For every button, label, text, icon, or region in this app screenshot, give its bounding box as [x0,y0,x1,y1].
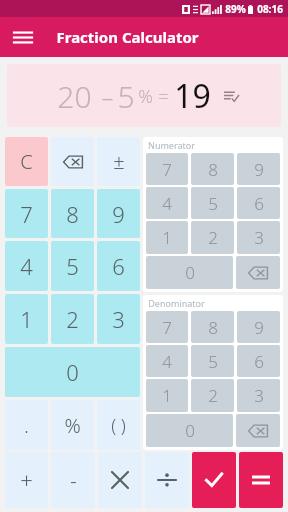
button[interactable]: 0 [5,347,140,397]
button[interactable]: 9 [97,189,140,238]
button[interactable]: Backspace Numerator [236,256,280,289]
button[interactable]: 4 [146,345,188,377]
staticText: 1 [162,384,172,407]
staticText: 8 [66,199,79,229]
button[interactable]: 6 [237,187,280,219]
staticText: . [24,412,29,439]
staticText: 2 [208,226,218,249]
staticText: + [20,465,33,495]
staticText: Numerator [148,139,195,151]
button[interactable]: 5 [191,187,234,219]
button[interactable]: 1 [146,221,188,254]
staticText: 89% [225,2,246,16]
staticText: % [138,84,153,109]
button[interactable]: . [5,400,48,450]
staticText: 5 [208,192,218,215]
staticText: 5 [208,350,218,373]
button[interactable]: 1 [5,294,48,344]
staticText: 8 [208,158,218,181]
staticText: 3 [112,304,125,334]
staticText: ± [113,148,125,175]
staticText: 7 [20,199,33,229]
button[interactable]: 7 [5,189,48,238]
button[interactable]: 9 [237,311,280,343]
staticText: 08:16 [257,2,283,16]
button[interactable]: 8 [191,153,234,185]
button[interactable]: 2 [51,294,94,344]
staticText: 0 [66,357,79,387]
button[interactable]: 8 [51,189,94,238]
staticText: 19 [174,74,211,118]
button[interactable]: 3 [237,379,280,412]
button[interactable]: History [221,86,241,106]
button[interactable]: 8 [191,311,234,343]
staticText: % [64,412,81,439]
staticText: 6 [254,192,264,215]
button[interactable]: 7 [146,153,188,185]
staticText: 8 [208,316,218,339]
staticText: 20 [57,76,92,117]
staticText: 5 [66,251,79,281]
staticText: 6 [112,251,125,281]
button[interactable]: 0 [146,256,233,289]
button[interactable]: 3 [97,294,140,344]
button[interactable]: 5 [51,241,94,291]
button[interactable]: % [51,400,94,450]
staticText: Denominator [148,297,205,309]
button[interactable]: 5 [191,345,234,377]
staticText: 2 [66,304,79,334]
staticText: 1 [20,304,33,334]
staticText: 4 [162,192,172,215]
staticText: 9 [254,316,264,339]
button[interactable]: + [5,452,48,508]
staticText: 3 [254,384,264,407]
staticText: 6 [254,350,264,373]
button[interactable]: Open navigation menu [6,20,40,54]
staticText: C [20,148,33,175]
staticText: 9 [254,158,264,181]
button[interactable]: Confirm [192,452,236,508]
button[interactable]: 0 [146,414,233,447]
staticText: 5 [117,76,135,117]
button[interactable]: 1 [146,379,188,412]
button[interactable]: 20 [7,64,281,127]
button[interactable]: 9 [237,153,280,185]
button[interactable]: 4 [146,187,188,219]
staticText: - [70,467,77,494]
staticText: 4 [162,350,172,373]
button[interactable]: - [51,452,95,508]
staticText: = [158,84,169,109]
staticText: 0 [185,419,195,442]
button[interactable]: Multiply [98,452,142,508]
button[interactable]: 3 [237,221,280,254]
button[interactable]: 4 [5,241,48,291]
staticText: 7 [162,158,172,181]
button[interactable]: 6 [97,241,140,291]
staticText: 7 [162,316,172,339]
staticText: 3 [254,226,264,249]
staticText: 1 [162,226,172,249]
button[interactable]: 7 [146,311,188,343]
button[interactable]: ( ) [97,400,140,450]
button[interactable]: 6 [237,345,280,377]
button[interactable]: 2 [191,379,234,412]
button[interactable]: 2 [191,221,234,254]
staticText: 0 [185,261,195,284]
staticText: Fraction Calculator [56,27,199,47]
staticText: 4 [20,251,33,281]
button[interactable]: Equals [239,452,283,508]
staticText: – [92,80,117,113]
button[interactable]: Divide [145,452,189,508]
button[interactable]: C [5,137,48,186]
button[interactable]: Backspace [51,137,94,186]
button[interactable]: ± [97,137,140,186]
staticText: ( ) [111,413,126,438]
staticText: 2 [208,384,218,407]
staticText: 9 [112,199,125,229]
button[interactable]: Backspace Denominator [236,414,280,447]
